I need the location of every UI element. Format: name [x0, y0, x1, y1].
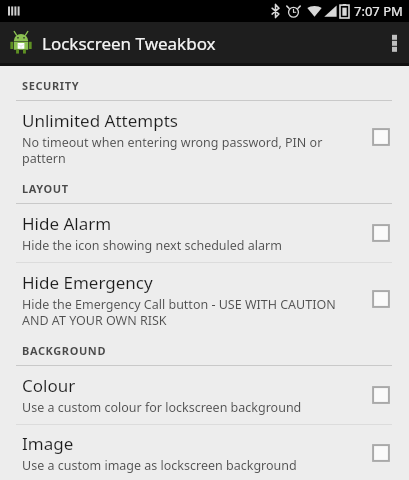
- button[interactable]: Image checkbox: [353, 425, 409, 480]
- button[interactable]: More options: [379, 22, 409, 63]
- button[interactable]: Hide Alarm checkbox: [353, 204, 409, 262]
- staticText: Use a custom image as lockscreen backgro…: [22, 457, 297, 474]
- staticText: Hide Alarm: [22, 212, 112, 235]
- button[interactable]: Colour: [0, 366, 409, 424]
- staticText: Use a custom colour for lockscreen backg…: [22, 399, 302, 416]
- button[interactable]: Hide Emergency: [0, 263, 409, 335]
- staticText: No timeout when entering wrong password,…: [22, 134, 345, 166]
- button[interactable]: Unlimited Attempts: [0, 101, 409, 173]
- staticText: BACKGROUND: [22, 343, 107, 358]
- button[interactable]: Colour checkbox: [353, 366, 409, 424]
- staticText: Image: [22, 432, 74, 455]
- staticText: Colour: [22, 374, 76, 397]
- staticText: Hide Emergency: [22, 271, 153, 294]
- staticText: Hide the Emergency Call button - USE WIT…: [22, 296, 345, 328]
- staticText: SECURITY: [22, 78, 80, 93]
- button[interactable]: Hide Emergency checkbox: [353, 263, 409, 335]
- staticText: Lockscreen Tweakbox: [42, 32, 216, 55]
- button[interactable]: Image: [0, 425, 409, 480]
- staticText: LAYOUT: [22, 181, 69, 196]
- staticText: 7:07 PM: [354, 2, 403, 20]
- staticText: Unlimited Attempts: [22, 109, 178, 132]
- staticText: Hide the icon showing next scheduled ala…: [22, 237, 282, 254]
- button[interactable]: Unlimited Attempts checkbox: [353, 101, 409, 173]
- button[interactable]: Hide Alarm: [0, 204, 409, 262]
